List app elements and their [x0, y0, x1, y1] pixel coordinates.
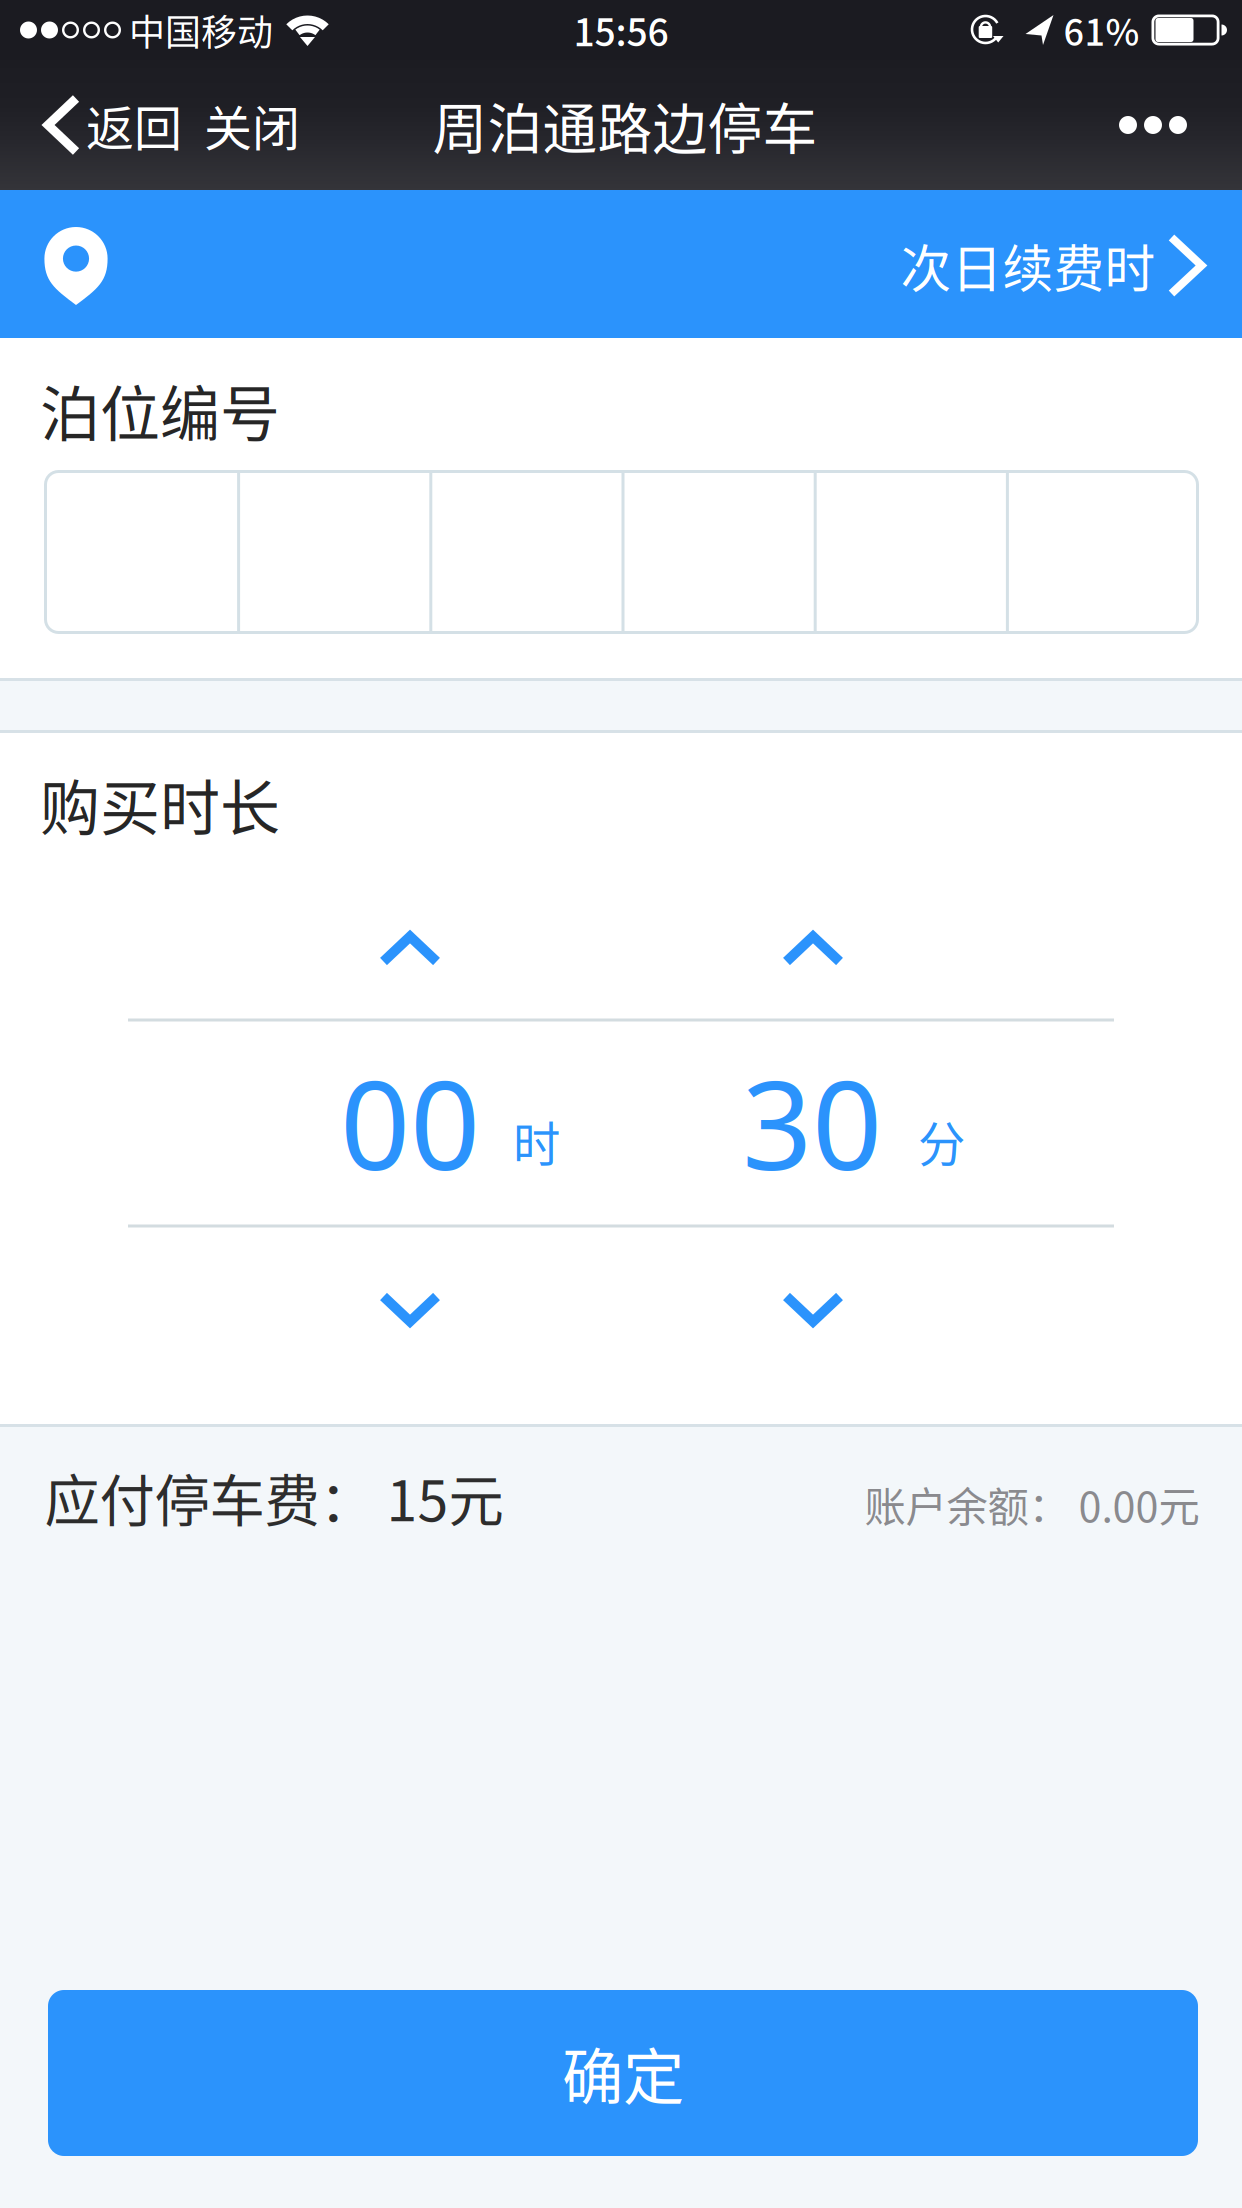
- button[interactable]: 增加小时: [359, 912, 460, 985]
- button[interactable]: 减少小时: [359, 1272, 460, 1345]
- staticText: 中国移动: [129, 4, 273, 56]
- button[interactable]: 更多: [1079, 60, 1242, 190]
- staticText: 账户余额： 0.00元: [864, 1474, 1199, 1534]
- staticText: 返回: [86, 90, 182, 160]
- staticText: 确定: [562, 2029, 684, 2117]
- staticText: 00: [340, 1039, 480, 1206]
- button[interactable]: 返回: [0, 60, 194, 190]
- staticText: 次日续费时: [900, 229, 1155, 302]
- staticText: 购买时长: [40, 761, 280, 847]
- button[interactable]: 关闭: [194, 60, 310, 190]
- staticText: 泊位编号: [40, 367, 280, 453]
- staticText: 30: [742, 1039, 882, 1206]
- staticText: 周泊通路边停车: [432, 85, 817, 165]
- staticText: 61%: [1063, 4, 1139, 56]
- staticText: 应付停车费： 15元: [44, 1457, 503, 1537]
- staticText: 时: [513, 1107, 560, 1175]
- staticText: 关闭: [204, 90, 300, 160]
- staticText: 分: [918, 1107, 965, 1175]
- button[interactable]: 减少分钟: [762, 1272, 863, 1345]
- button[interactable]: 增加分钟: [762, 912, 863, 985]
- button[interactable]: 次日续费时: [0, 190, 1242, 338]
- button[interactable]: 确定: [48, 1990, 1198, 2156]
- staticText: 15:56: [573, 3, 668, 57]
